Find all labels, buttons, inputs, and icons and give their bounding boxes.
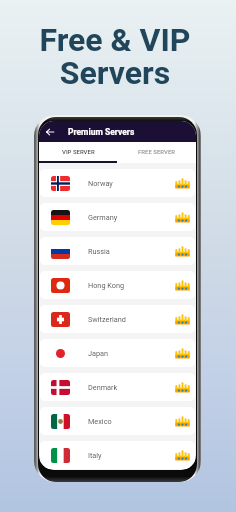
staticText: Free & VIP Servers (0, 21, 233, 92)
button[interactable]: Russia (40, 237, 195, 265)
other: Premium (175, 212, 190, 223)
staticText: Italy (88, 451, 102, 460)
staticText: Norway (88, 179, 113, 188)
staticText: Switzerland (88, 315, 126, 324)
other: Premium (175, 382, 190, 393)
button[interactable]: Denmark (40, 373, 195, 401)
button[interactable]: Japan (40, 339, 195, 367)
button[interactable]: Mexico (40, 407, 195, 435)
button[interactable]: Germany (40, 203, 195, 231)
button[interactable]: Italy (40, 441, 195, 469)
staticText: Mexico (88, 417, 112, 426)
button[interactable]: Norway (40, 169, 195, 197)
staticText: Japan (88, 349, 109, 358)
other: Premium (175, 416, 190, 427)
other: Premium (175, 450, 190, 461)
staticText: Premium Servers (68, 127, 135, 137)
other: Premium (175, 280, 190, 291)
staticText: Russia (88, 247, 110, 256)
staticText: VIP SERVER (62, 148, 95, 155)
button[interactable]: Back (40, 121, 59, 142)
button[interactable]: VIP SERVER (39, 142, 117, 163)
button[interactable]: FREE SERVER (117, 142, 196, 163)
staticText: Germany (88, 213, 118, 222)
staticText: Hong Kong (88, 281, 125, 290)
other: Premium (175, 314, 190, 325)
button[interactable]: Hong Kong (40, 271, 195, 299)
other: Premium (175, 348, 190, 359)
staticText: Denmark (88, 383, 118, 392)
other: Premium (175, 178, 190, 189)
other: Premium (175, 246, 190, 257)
staticText: FREE SERVER (138, 148, 176, 155)
button[interactable]: Switzerland (40, 305, 195, 333)
